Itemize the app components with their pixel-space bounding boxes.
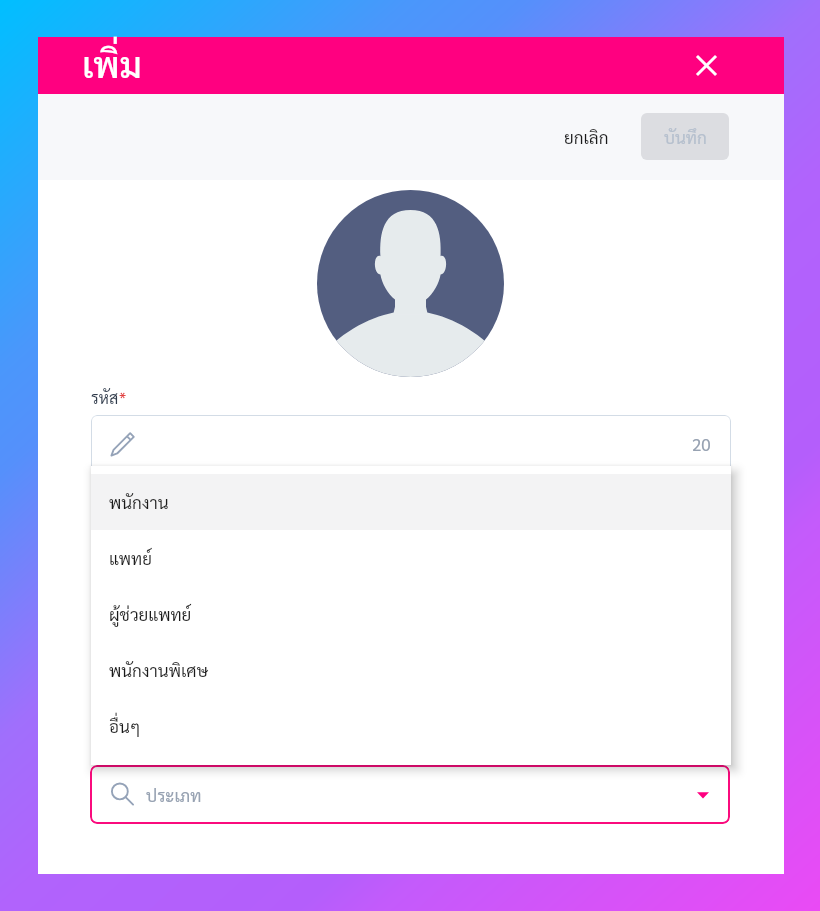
- button[interactable]: ประเภท: [90, 765, 730, 824]
- button[interactable]: ผู้ช่วยแพทย์: [91, 586, 731, 642]
- button[interactable]: แพทย์: [91, 530, 731, 586]
- button[interactable]: พนักงานพิเศษ: [91, 642, 731, 698]
- staticText: อื่นๆ: [109, 715, 141, 737]
- staticText: ประเภท: [146, 784, 202, 806]
- staticText: แพทย์: [109, 547, 152, 569]
- staticText: รหัส: [91, 387, 119, 408]
- button[interactable]: อื่นๆ: [91, 698, 731, 754]
- staticText: *: [119, 387, 127, 408]
- staticText: ยกเลิก: [564, 126, 609, 148]
- button[interactable]: 20: [91, 415, 731, 473]
- staticText: เพิ่ม: [82, 40, 142, 87]
- staticText: บันทึก: [664, 126, 707, 148]
- staticText: พนักงาน: [109, 491, 169, 513]
- button[interactable]: ยกเลิก: [552, 116, 621, 158]
- staticText: 20: [692, 433, 711, 455]
- staticText: ผู้ช่วยแพทย์: [109, 603, 192, 625]
- button[interactable]: Close: [689, 48, 723, 82]
- button[interactable]: บันทึก: [641, 113, 729, 160]
- staticText: พนักงานพิเศษ: [109, 659, 208, 681]
- button[interactable]: พนักงาน: [91, 474, 731, 530]
